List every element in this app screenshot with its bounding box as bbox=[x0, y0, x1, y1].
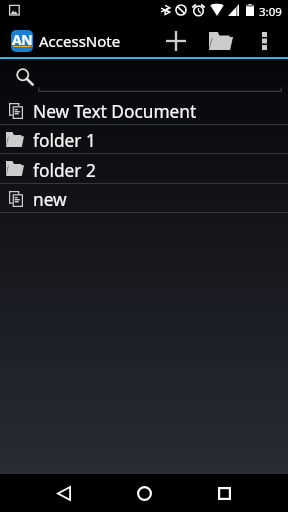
staticText: New Text Document bbox=[33, 100, 197, 124]
button[interactable]: More options bbox=[248, 25, 280, 57]
staticText: AN bbox=[12, 30, 33, 49]
staticText: new bbox=[33, 188, 67, 212]
staticText: AccessNote bbox=[39, 31, 121, 51]
button[interactable]: Open folder bbox=[199, 25, 243, 57]
staticText: folder 1 bbox=[33, 129, 96, 153]
staticText: folder 2 bbox=[33, 159, 96, 183]
button[interactable]: new bbox=[0, 184, 288, 213]
button[interactable]: folder 1 bbox=[0, 125, 288, 154]
staticText: 3:09 bbox=[259, 4, 282, 20]
button[interactable]: Home bbox=[124, 474, 164, 512]
button[interactable]: New Text Document bbox=[0, 95, 288, 125]
button[interactable]: Search bbox=[38, 85, 282, 92]
button[interactable]: folder 2 bbox=[0, 154, 288, 184]
button[interactable]: Back bbox=[44, 474, 84, 512]
button[interactable]: Recents bbox=[204, 474, 244, 512]
button[interactable]: New bbox=[154, 25, 198, 57]
